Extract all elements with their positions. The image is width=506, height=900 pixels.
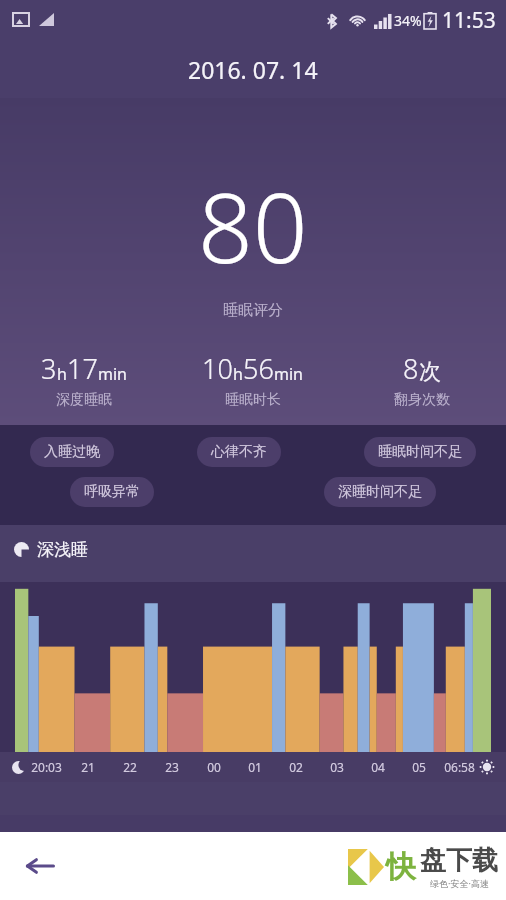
- staticText: h: [57, 363, 67, 385]
- staticText: 10: [202, 350, 233, 387]
- staticText: 呼吸异常: [84, 483, 140, 501]
- button[interactable]: 入睡过晚: [30, 437, 114, 467]
- button[interactable]: Back: [18, 844, 62, 888]
- staticText: min: [274, 363, 303, 385]
- button[interactable]: 深睡时间不足: [324, 477, 436, 507]
- staticText: min: [98, 363, 127, 385]
- staticText: 深睡时间不足: [338, 483, 422, 501]
- staticText: 00: [207, 759, 221, 775]
- staticText: 2016. 07. 14: [188, 54, 318, 85]
- staticText: 34%: [394, 11, 422, 30]
- button[interactable]: 呼吸异常: [70, 477, 154, 507]
- staticText: 20:03: [31, 759, 62, 775]
- staticText: 17: [67, 350, 98, 387]
- button[interactable]: 睡眠时间不足: [364, 437, 476, 467]
- staticText: 05: [412, 759, 426, 775]
- staticText: 80: [198, 160, 308, 291]
- staticText: 01: [248, 759, 262, 775]
- staticText: 心律不齐: [211, 443, 267, 461]
- staticText: 睡眠时间不足: [378, 443, 462, 461]
- staticText: 23: [165, 759, 179, 775]
- staticText: 21: [81, 759, 95, 775]
- staticText: 深度睡眠: [56, 391, 112, 409]
- staticText: 睡眠评分: [223, 301, 283, 320]
- staticText: 06:58: [444, 759, 475, 775]
- staticText: 次: [419, 358, 441, 386]
- staticText: 绿色·安全·高速: [430, 877, 489, 889]
- staticText: 睡眠时长: [225, 391, 281, 409]
- staticText: 11:53: [442, 6, 496, 35]
- staticText: 03: [330, 759, 344, 775]
- staticText: 深浅睡: [37, 539, 88, 560]
- staticText: 快: [386, 848, 416, 886]
- staticText: 翻身次数: [394, 391, 450, 409]
- staticText: 入睡过晚: [44, 443, 100, 461]
- staticText: 22: [123, 759, 137, 775]
- staticText: 盘下载: [420, 844, 498, 877]
- staticText: 3: [41, 350, 57, 387]
- staticText: 02: [289, 759, 303, 775]
- staticText: 8: [403, 350, 419, 387]
- button[interactable]: 心律不齐: [197, 437, 281, 467]
- staticText: 56: [243, 350, 274, 387]
- staticText: h: [233, 363, 243, 385]
- staticText: 04: [371, 759, 385, 775]
